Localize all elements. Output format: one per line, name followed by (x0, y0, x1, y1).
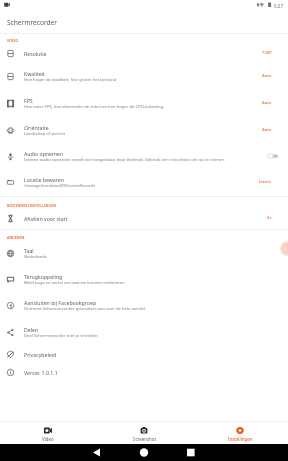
staticText: ANDEREN (7, 235, 25, 240)
staticText: Privacybeleid (24, 351, 57, 358)
button[interactable]: Versie: 1.0.1.1 (0, 361, 288, 383)
staticText: Hoe meer FPS, hoe vloeiender de video en… (24, 104, 165, 110)
button[interactable]: Audio opnemen (0, 145, 288, 167)
staticText: Ontmoet Schermrecorder gebruikers van ov… (24, 306, 145, 312)
staticText: VIDEO (7, 38, 19, 43)
button[interactable]: Kwaliteit (0, 65, 288, 87)
button[interactable]: Audio opnemen aan/uit (267, 152, 278, 160)
staticText: Versie: 1.0.1.1 (24, 369, 58, 376)
staticText: Video (42, 436, 54, 442)
button[interactable]: Aansluiten bij Facebookgroep (0, 294, 288, 316)
staticText: Auto (262, 127, 272, 133)
staticText: Resolutie (24, 50, 47, 57)
staticText: Meld bugs en vertel ons wat we kunnen ve… (24, 280, 125, 286)
button[interactable]: Locatie bewaren (0, 171, 288, 193)
staticText: Aansluiten bij Facebookgroep (24, 299, 97, 306)
staticText: Auto (262, 100, 272, 106)
staticText: BEDIENINGSINSTELLINGEN (7, 203, 57, 208)
staticText: 3s (267, 215, 272, 221)
staticText: Aftellen voor start (24, 215, 68, 222)
staticText: 720P (262, 50, 272, 56)
staticText: Audio opnemen (24, 150, 63, 157)
staticText: Kwaliteit (24, 70, 45, 77)
staticText: Taal (24, 247, 34, 254)
staticText: Delen (24, 326, 39, 333)
button[interactable]: Delen (0, 321, 288, 343)
button[interactable]: Aftellen voor start (0, 207, 288, 229)
staticText: /storage/emulated/0/ScreenRecords (24, 183, 96, 189)
staticText: Auto (262, 73, 272, 79)
staticText: 6:27 (274, 3, 284, 9)
button[interactable]: Terugkoppeling (0, 268, 288, 290)
staticText: Instellingen (228, 436, 253, 442)
staticText: Intern (259, 179, 272, 185)
staticText: Locatie bewaren (24, 176, 64, 183)
staticText: Deel Schermrecorder met je vrienden (24, 333, 98, 339)
button[interactable]: Video (0, 423, 96, 445)
button[interactable]: Privacybeleid (0, 343, 288, 365)
staticText: Nederlands (24, 254, 47, 260)
staticText: FPS (24, 97, 33, 104)
button[interactable]: Taal (0, 242, 288, 264)
staticText: Schermrecorder (7, 18, 58, 27)
staticText: Hoe hoger de kwaliteit, hoe groter het b… (24, 77, 117, 83)
staticText: Screenshot (133, 436, 156, 442)
button[interactable]: Instellingen (192, 423, 288, 445)
staticText: Interne audio opnemen wordt niet toegest… (24, 157, 225, 163)
button[interactable]: Resolutie (0, 42, 288, 64)
button[interactable]: Screenshot (96, 423, 192, 445)
staticText: Terugkoppeling (24, 273, 63, 280)
button[interactable]: FPS (0, 92, 288, 114)
button[interactable]: Oriëntatie (0, 119, 288, 141)
staticText: Oriëntatie (24, 124, 49, 131)
staticText: Landschap of portret (24, 131, 66, 137)
